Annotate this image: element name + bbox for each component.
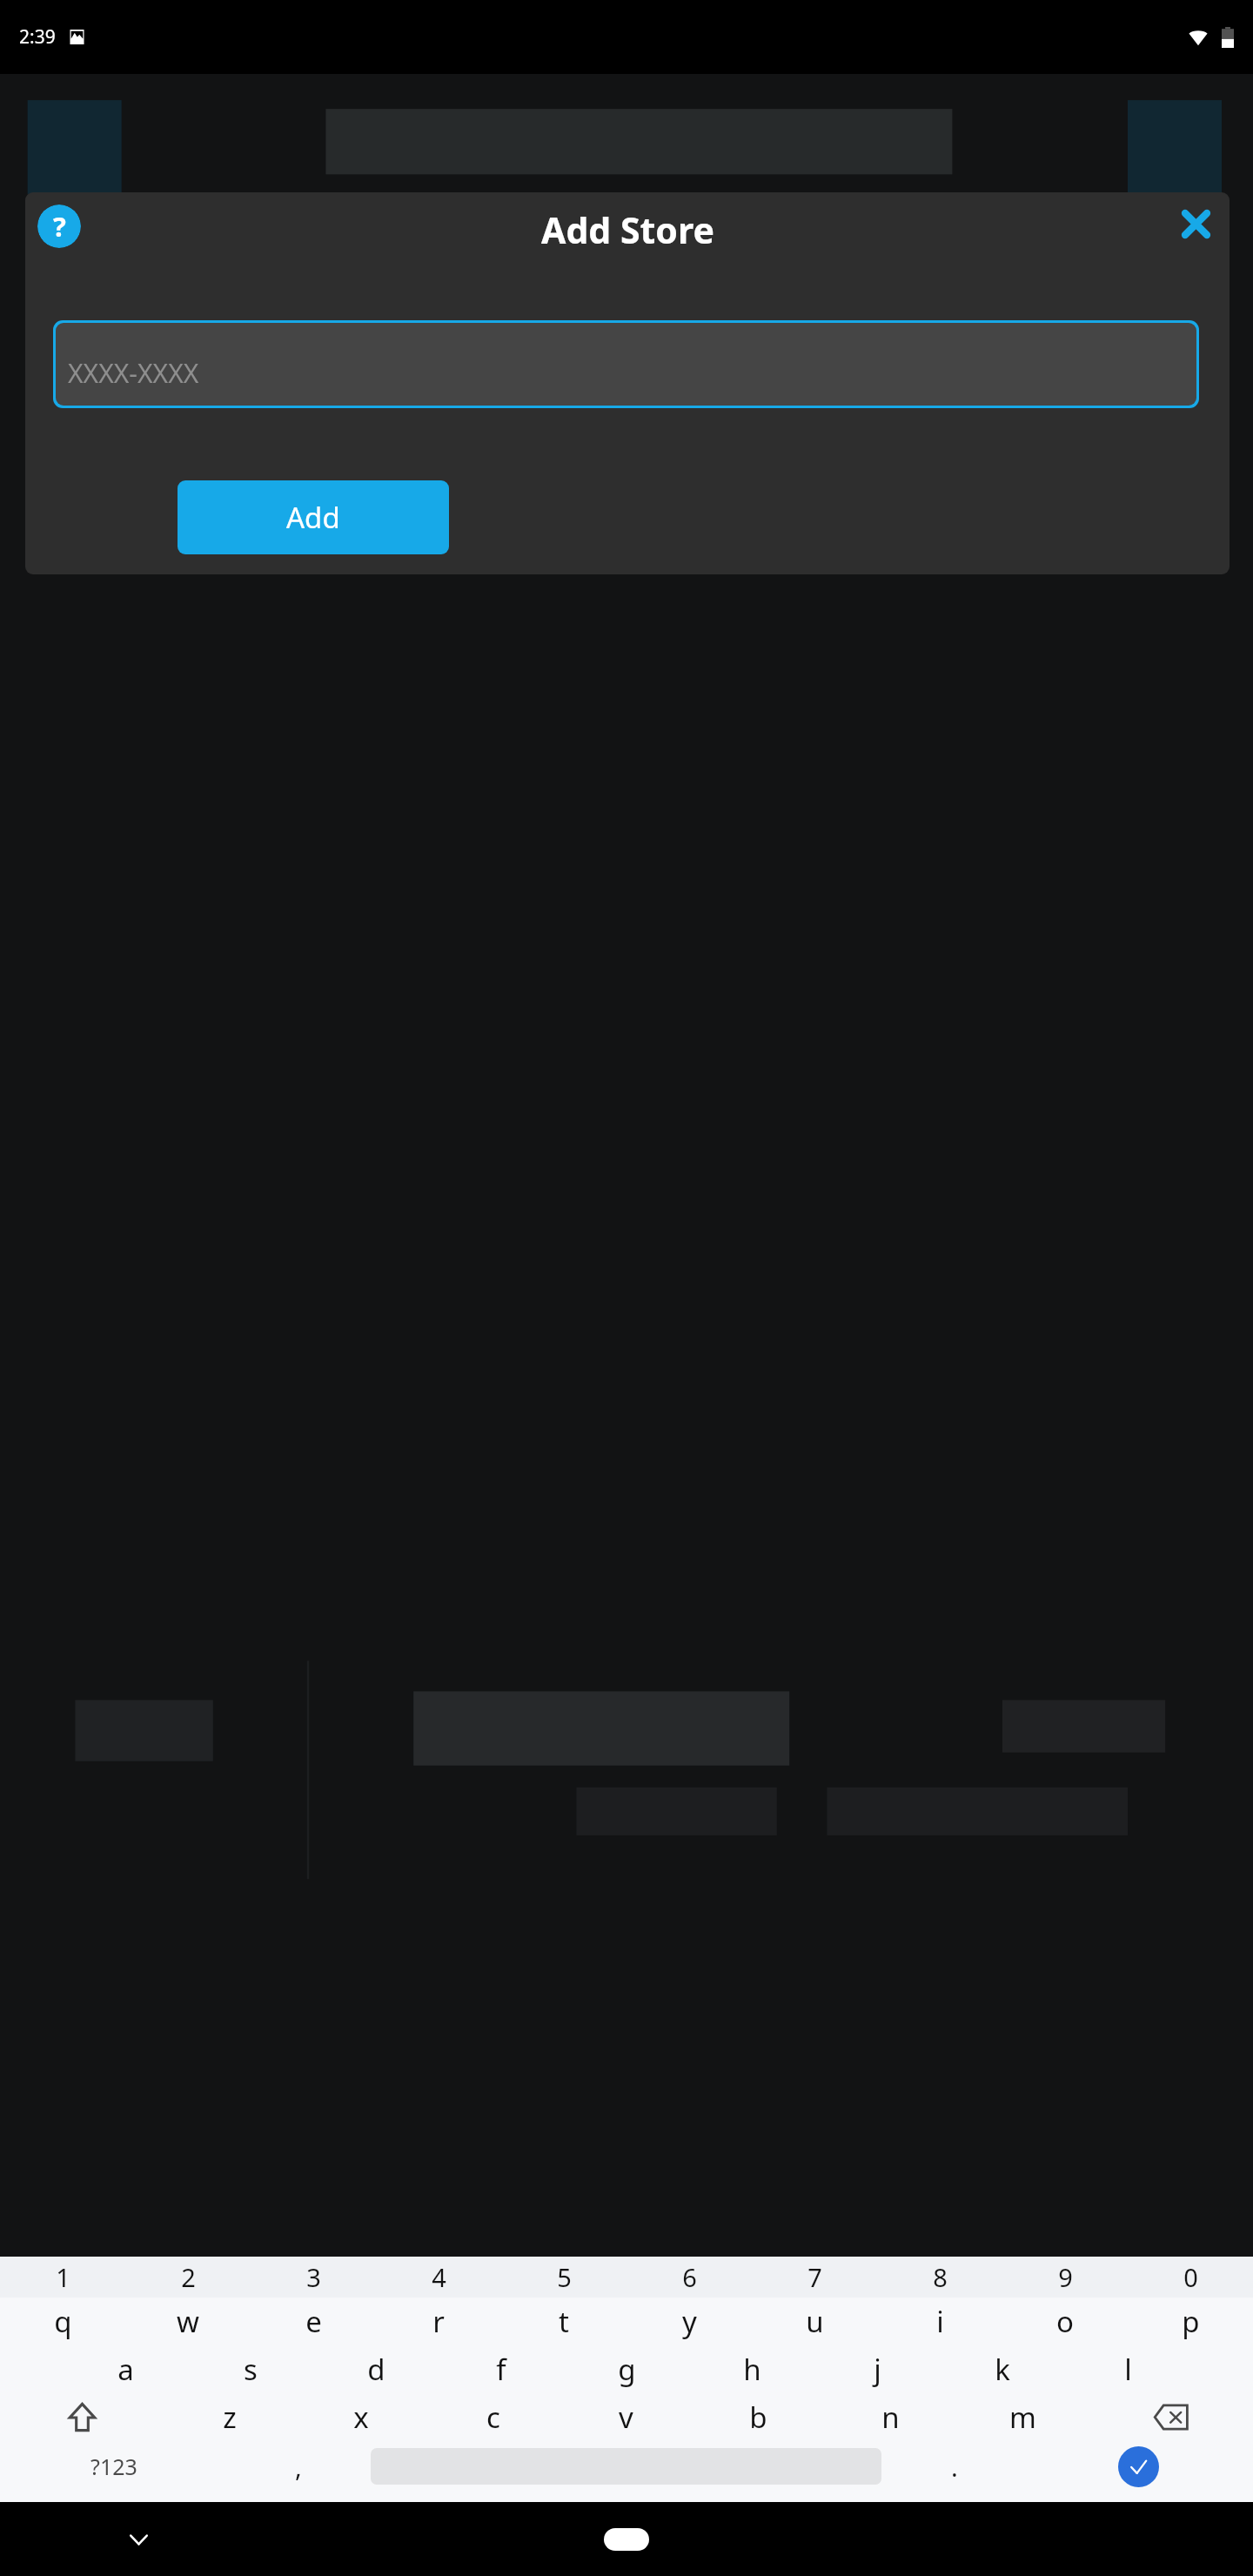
button[interactable]: t — [501, 2298, 626, 2345]
staticText: 3 — [306, 2260, 321, 2294]
button[interactable]: c — [427, 2393, 559, 2441]
button[interactable]: p — [1128, 2298, 1253, 2345]
button[interactable]: z — [164, 2393, 295, 2441]
button[interactable]: a — [63, 2345, 188, 2393]
button[interactable]: y — [626, 2298, 752, 2345]
button[interactable]: r — [376, 2298, 501, 2345]
button[interactable]: l — [1065, 2345, 1190, 2393]
button[interactable]: Enter — [1118, 2446, 1159, 2487]
staticText: w — [177, 2302, 199, 2341]
staticText: Add Store — [541, 205, 714, 254]
staticText: f — [496, 2350, 506, 2389]
button[interactable]: b — [692, 2393, 824, 2441]
staticText: q — [54, 2302, 72, 2341]
button[interactable]: Home — [604, 2528, 649, 2551]
button[interactable]: k — [940, 2345, 1065, 2393]
staticText: 6 — [682, 2260, 697, 2294]
staticText: 2:39 — [19, 24, 56, 50]
button[interactable]: XXXX-XXXX — [56, 323, 1196, 406]
staticText: t — [559, 2302, 569, 2341]
staticText: , — [295, 2450, 302, 2484]
staticText: 1 — [56, 2260, 70, 2294]
staticText: y — [682, 2302, 697, 2341]
button[interactable]: m — [956, 2393, 1089, 2441]
button[interactable]: 5 — [501, 2257, 626, 2298]
button[interactable]: j — [814, 2345, 940, 2393]
staticText: 4 — [432, 2260, 446, 2294]
button[interactable]: Backspace — [1089, 2393, 1253, 2441]
staticText: e — [305, 2302, 322, 2341]
button[interactable]: 1 — [0, 2257, 125, 2298]
staticText: n — [881, 2398, 900, 2437]
button[interactable]: ?123 — [0, 2441, 228, 2492]
button[interactable]: 0 — [1128, 2257, 1253, 2298]
button[interactable]: h — [689, 2345, 814, 2393]
button[interactable]: s — [188, 2345, 313, 2393]
staticText: ? — [53, 208, 66, 245]
staticText: 2 — [181, 2260, 196, 2294]
button[interactable]: o — [1002, 2298, 1128, 2345]
staticText: g — [618, 2350, 636, 2389]
button[interactable]: 8 — [877, 2257, 1002, 2298]
staticText: ?123 — [90, 2452, 137, 2481]
staticText: m — [1009, 2398, 1036, 2437]
button[interactable]: i — [877, 2298, 1002, 2345]
staticText: h — [743, 2350, 761, 2389]
staticText: r — [432, 2302, 445, 2341]
button[interactable]: q — [0, 2298, 125, 2345]
staticText: j — [874, 2350, 881, 2389]
staticText: u — [806, 2302, 824, 2341]
button[interactable]: w — [125, 2298, 251, 2345]
staticText: v — [619, 2398, 633, 2437]
button[interactable]: 3 — [251, 2257, 376, 2298]
button[interactable]: Help — [37, 205, 81, 248]
button[interactable]: , — [228, 2441, 368, 2492]
staticText: b — [749, 2398, 767, 2437]
button[interactable]: Space — [371, 2448, 881, 2485]
button[interactable]: v — [559, 2393, 692, 2441]
staticText: i — [936, 2302, 944, 2341]
button[interactable]: 2 — [125, 2257, 251, 2298]
button[interactable]: Close — [1171, 199, 1220, 248]
button[interactable]: 6 — [626, 2257, 752, 2298]
staticText: 9 — [1058, 2260, 1073, 2294]
staticText: 7 — [807, 2260, 822, 2294]
button[interactable]: e — [251, 2298, 376, 2345]
staticText: XXXX-XXXX — [68, 355, 199, 391]
button[interactable]: n — [824, 2393, 956, 2441]
staticText: 8 — [933, 2260, 948, 2294]
staticText: z — [223, 2398, 237, 2437]
button[interactable]: Shift — [0, 2393, 164, 2441]
button[interactable]: Hide keyboard — [117, 2519, 159, 2560]
staticText: p — [1182, 2302, 1200, 2341]
button[interactable]: g — [564, 2345, 689, 2393]
staticText: o — [1056, 2302, 1074, 2341]
staticText: x — [353, 2398, 369, 2437]
button[interactable]: u — [752, 2298, 877, 2345]
button[interactable]: Add — [178, 480, 449, 554]
staticText: c — [486, 2398, 500, 2437]
staticText: 5 — [557, 2260, 572, 2294]
button[interactable]: d — [313, 2345, 439, 2393]
button[interactable]: 9 — [1002, 2257, 1128, 2298]
button[interactable]: f — [439, 2345, 564, 2393]
staticText: 0 — [1183, 2260, 1198, 2294]
button[interactable]: 4 — [376, 2257, 501, 2298]
staticText: d — [367, 2350, 385, 2389]
button[interactable]: . — [884, 2441, 1024, 2492]
staticText: a — [117, 2350, 134, 2389]
staticText: s — [244, 2350, 258, 2389]
staticText: . — [951, 2450, 958, 2484]
button[interactable]: 7 — [752, 2257, 877, 2298]
staticText: l — [1124, 2350, 1132, 2389]
staticText: Add — [286, 498, 340, 537]
staticText: k — [995, 2350, 1010, 2389]
button[interactable]: x — [295, 2393, 427, 2441]
